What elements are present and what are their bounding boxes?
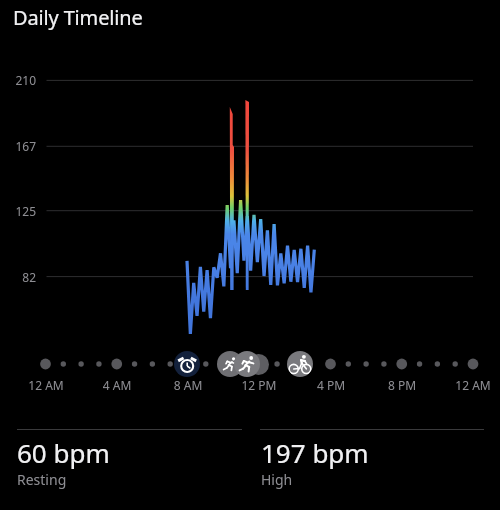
- staticText: 8 PM: [370, 377, 434, 393]
- staticText: 12 AM: [14, 377, 78, 393]
- staticText: 167: [0, 138, 36, 154]
- staticText: 12 PM: [227, 377, 291, 393]
- staticText: 12 AM: [441, 377, 500, 393]
- staticText: High: [261, 470, 293, 489]
- button[interactable]: 60 bpm: [17, 435, 242, 489]
- button[interactable]: 197 bpm: [261, 435, 485, 489]
- staticText: 4 PM: [299, 377, 363, 393]
- staticText: 60 bpm: [17, 435, 110, 470]
- staticText: 4 AM: [85, 377, 149, 393]
- staticText: 210: [0, 72, 36, 88]
- staticText: 197 bpm: [261, 435, 369, 470]
- button[interactable]: Walk: [217, 351, 243, 377]
- staticText: 8 AM: [156, 377, 220, 393]
- staticText: Daily Timeline: [13, 4, 143, 31]
- button[interactable]: Alarm: [174, 351, 200, 377]
- staticText: 125: [0, 203, 36, 219]
- staticText: Resting: [17, 470, 67, 489]
- button[interactable]: Run: [234, 351, 260, 377]
- staticText: 82: [0, 269, 36, 285]
- button[interactable]: Workout: [248, 354, 269, 375]
- button[interactable]: Cycling: [287, 351, 313, 377]
